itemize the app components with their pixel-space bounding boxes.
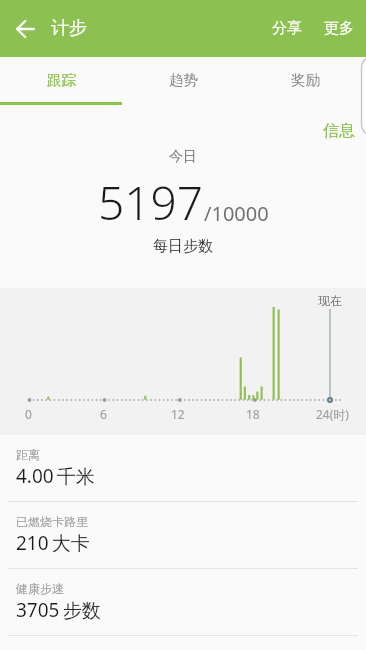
button[interactable]: 分享 [261, 5, 313, 52]
staticText: 3705 步数 [16, 597, 101, 623]
button[interactable]: 趋势 [122, 57, 244, 105]
staticText: 跟踪 [47, 71, 76, 89]
button[interactable]: 信息 [305, 113, 366, 149]
staticText: 趋势 [169, 71, 198, 89]
staticText: 已燃烧卡路里 [16, 514, 88, 529]
staticText: 4.00 千米 [16, 463, 95, 489]
staticText: 信息 [323, 121, 355, 141]
staticText: 今日 [169, 148, 197, 166]
staticText: /10000 [204, 200, 269, 227]
staticText: 18 [246, 406, 260, 422]
button[interactable]: 距离 [0, 435, 366, 501]
button[interactable]: 健康步速 [0, 569, 366, 635]
button[interactable]: 更多 [313, 5, 366, 52]
staticText: 健康步速 [16, 581, 64, 596]
staticText: 现在 [318, 293, 342, 308]
staticText: 距离 [16, 447, 40, 462]
staticText: 0 [25, 406, 32, 422]
button[interactable]: 奖励 [244, 57, 366, 105]
staticText: 分享 [272, 19, 302, 38]
staticText: 12 [171, 406, 185, 422]
button[interactable]: Back [0, 4, 50, 54]
staticText: 更多 [324, 19, 354, 38]
staticText: 24(时) [316, 406, 349, 422]
staticText: 5197 [98, 171, 204, 234]
staticText: 奖励 [291, 71, 320, 89]
staticText: 210 大卡 [16, 530, 90, 556]
staticText: 每日步数 [153, 237, 213, 256]
button[interactable]: 跟踪 [0, 57, 122, 105]
staticText: 计步 [51, 17, 87, 40]
button[interactable]: 已燃烧卡路里 [0, 502, 366, 568]
staticText: 6 [100, 406, 107, 422]
